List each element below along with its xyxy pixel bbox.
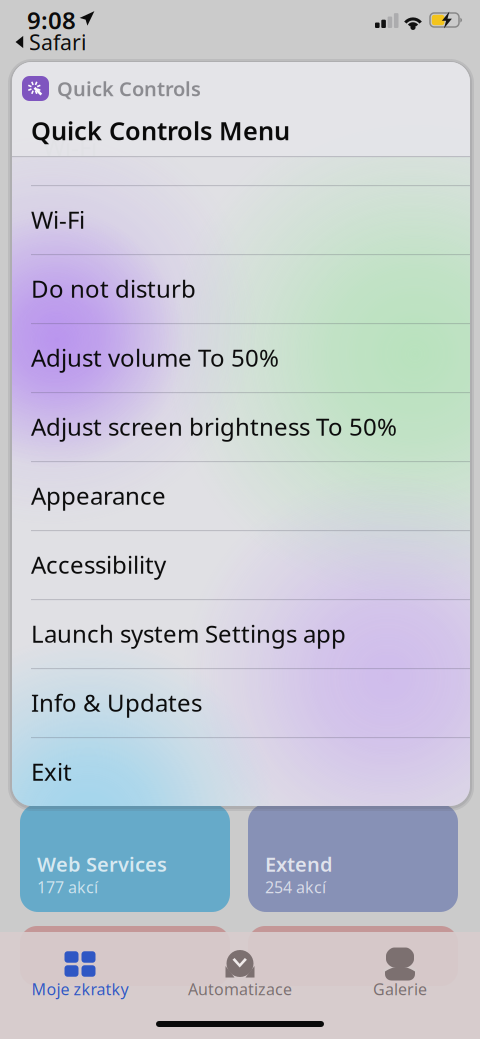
staticText: Web Services xyxy=(37,851,167,877)
button[interactable]: Galerie xyxy=(320,938,480,1000)
staticText: Wi-Fi xyxy=(31,204,85,235)
button[interactable]: Appearance xyxy=(12,461,470,530)
staticText: Appearance xyxy=(31,480,166,511)
staticText: Exit xyxy=(31,756,72,787)
button[interactable]: Adjust volume To 50% xyxy=(12,323,470,392)
button[interactable]: Do not disturb xyxy=(12,254,470,323)
staticText: Galerie xyxy=(373,978,427,1000)
button[interactable]: Wi-Fi xyxy=(12,185,470,254)
staticText: Quick Controls Menu xyxy=(31,114,290,147)
staticText: Adjust volume To 50% xyxy=(31,342,279,373)
staticText: Accessibility xyxy=(31,549,166,580)
button[interactable]: Info & Updates xyxy=(12,668,470,737)
button[interactable]: Accessibility xyxy=(12,530,470,599)
staticText: 254 akcí xyxy=(265,876,326,898)
button[interactable]: Launch system Settings app xyxy=(12,599,470,668)
staticText: Automatizace xyxy=(188,978,292,1000)
staticText: Safari xyxy=(29,28,87,56)
staticText: Adjust screen brightness To 50% xyxy=(31,411,397,442)
button[interactable]: Adjust screen brightness To 50% xyxy=(12,392,470,461)
staticText: 9:08 xyxy=(27,4,76,36)
button[interactable]: Exit xyxy=(12,737,470,806)
staticText: Wi-Fi xyxy=(43,131,97,163)
staticText: Launch system Settings app xyxy=(31,618,346,649)
staticText: Do not disturb xyxy=(31,273,196,304)
button[interactable]: Automatizace xyxy=(160,938,320,1000)
button[interactable]: Extend xyxy=(248,804,458,912)
staticText: Moje zkratky xyxy=(31,978,128,1000)
staticText: Extend xyxy=(265,851,333,877)
staticText: Quick Controls xyxy=(57,75,201,102)
staticText: Info & Updates xyxy=(31,687,202,718)
button[interactable]: Web Services xyxy=(20,804,230,912)
button[interactable]: Moje zkratky xyxy=(0,938,160,1000)
staticText: 177 akcí xyxy=(37,876,98,898)
